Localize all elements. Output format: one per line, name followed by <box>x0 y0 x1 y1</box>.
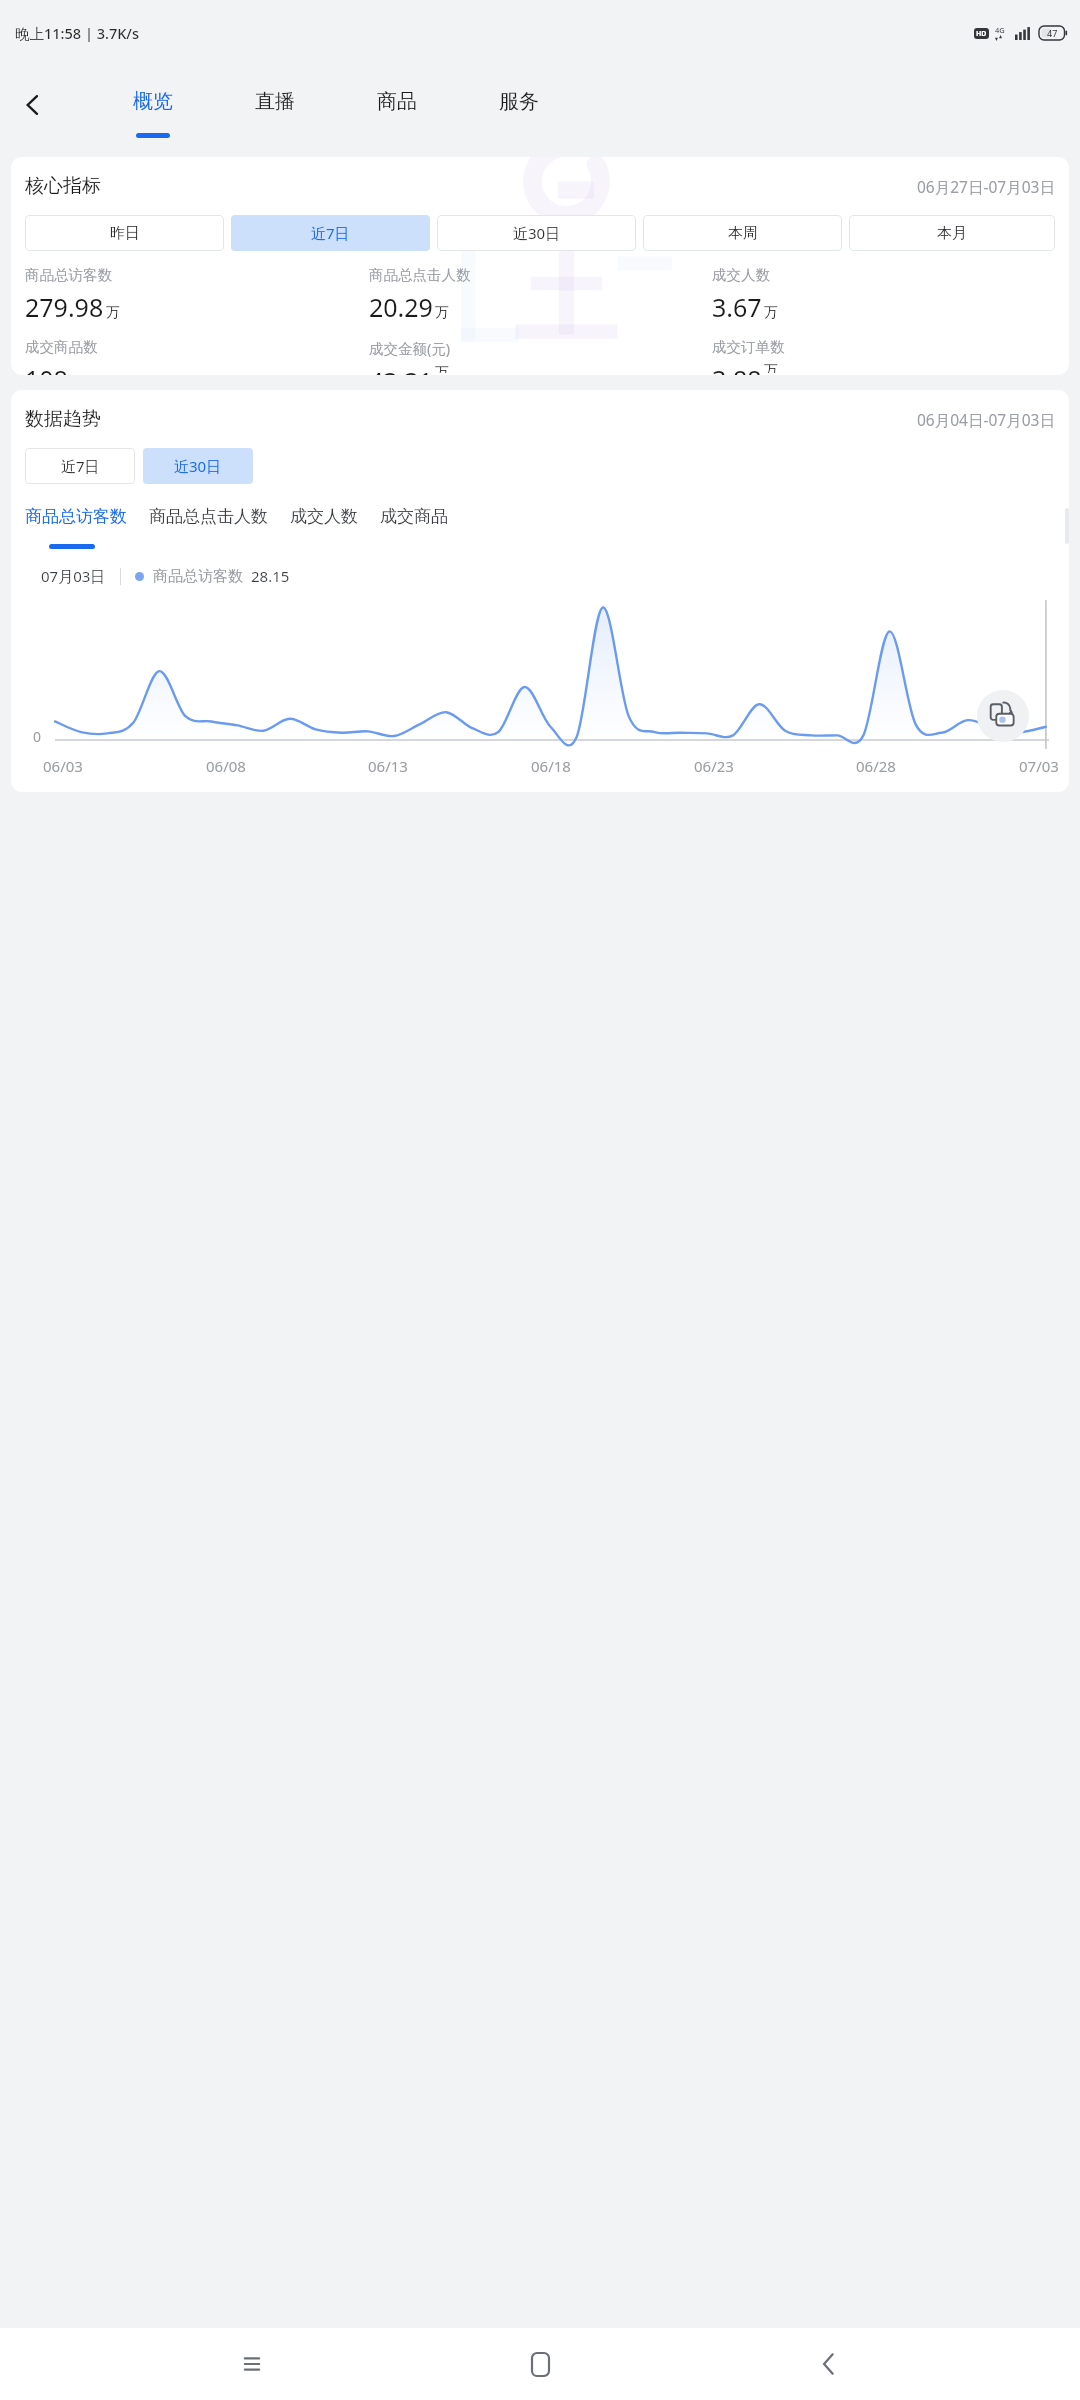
staticText: 成交商品数 <box>25 338 98 356</box>
button[interactable]: Rotate screen <box>977 690 1029 742</box>
staticText: 概览 <box>133 89 173 114</box>
staticText: 06/03 <box>43 756 83 776</box>
staticText: 06/28 <box>856 756 896 776</box>
staticText: 万 <box>435 304 449 322</box>
staticText: 20.29 <box>369 290 433 324</box>
button[interactable]: 本周 <box>643 215 842 251</box>
button[interactable]: 成交人数 <box>290 506 380 550</box>
button[interactable]: Home <box>504 2328 576 2400</box>
staticText: 0 <box>33 727 42 746</box>
staticText: 晚上11:58 | 3.7K/s <box>15 23 139 43</box>
staticText: 商品总访客数 <box>25 506 127 527</box>
button[interactable]: 商品总点击人数 <box>149 506 290 550</box>
staticText: 商品总访客数 <box>25 266 112 284</box>
staticText: 数据趋势 <box>25 407 101 431</box>
staticText: 直播 <box>255 89 295 114</box>
staticText: 成交金额(元) <box>369 338 451 358</box>
button[interactable]: 成交商品 <box>380 506 470 550</box>
staticText: 商品总点击人数 <box>369 266 471 284</box>
staticText: 服务 <box>499 89 539 114</box>
staticText: 108 <box>25 362 68 375</box>
staticText: 万 <box>106 304 120 322</box>
staticText: 06/08 <box>206 756 246 776</box>
staticText: 近30日 <box>513 223 561 243</box>
staticText: 近30日 <box>174 456 222 476</box>
staticText: 本周 <box>728 224 758 243</box>
staticText: 47 <box>1047 27 1058 39</box>
staticText: 07/03 <box>1019 756 1059 776</box>
button[interactable]: 近7日 <box>25 448 135 484</box>
staticText: 06/23 <box>694 756 734 776</box>
staticText: 成交人数 <box>712 266 770 284</box>
button[interactable]: 商品 <box>336 66 458 144</box>
button[interactable]: 昨日 <box>25 215 224 251</box>
staticText: 万 <box>435 364 449 373</box>
button[interactable]: 服务 <box>458 66 580 144</box>
staticText: 近7日 <box>61 456 100 476</box>
staticText: 商品总点击人数 <box>149 506 268 527</box>
staticText: 昨日 <box>110 224 140 243</box>
staticText: 3.67 <box>712 290 762 324</box>
staticText: 成交商品 <box>380 506 448 527</box>
button[interactable]: Recents <box>216 2328 288 2400</box>
staticText: 06/13 <box>368 756 408 776</box>
staticText: 万 <box>764 304 778 322</box>
staticText: 商品总访客数 <box>153 567 243 586</box>
staticText: 06月27日-07月03日 <box>917 176 1055 197</box>
staticText: 万 <box>764 362 778 373</box>
button[interactable]: 商品总访客数 <box>25 506 149 550</box>
staticText: 成交人数 <box>290 506 358 527</box>
staticText: 28.15 <box>251 566 290 586</box>
staticText: 07月03日 <box>41 566 106 586</box>
staticText: 核心指标 <box>25 174 101 198</box>
staticText: 06/18 <box>531 756 571 776</box>
staticText: 3.88 <box>712 362 762 375</box>
staticText: 成交订单数 <box>712 338 785 356</box>
staticText: 4G <box>995 25 1005 35</box>
staticText: 43.31 <box>369 364 433 375</box>
button[interactable]: Back <box>792 2328 864 2400</box>
staticText: 06月04日-07月03日 <box>917 409 1055 430</box>
staticText: 近7日 <box>311 223 350 243</box>
button[interactable]: 本月 <box>849 215 1055 251</box>
button[interactable]: Back <box>6 78 60 132</box>
staticText: 本月 <box>937 224 967 243</box>
button[interactable]: 概览 <box>92 66 214 144</box>
staticText: 商品 <box>377 89 417 114</box>
button[interactable]: 近30日 <box>437 215 636 251</box>
button[interactable]: 近30日 <box>143 448 253 484</box>
button[interactable]: 近7日 <box>231 215 430 251</box>
staticText: 279.98 <box>25 290 104 324</box>
staticText: HD <box>976 29 987 39</box>
button[interactable]: 直播 <box>214 66 336 144</box>
